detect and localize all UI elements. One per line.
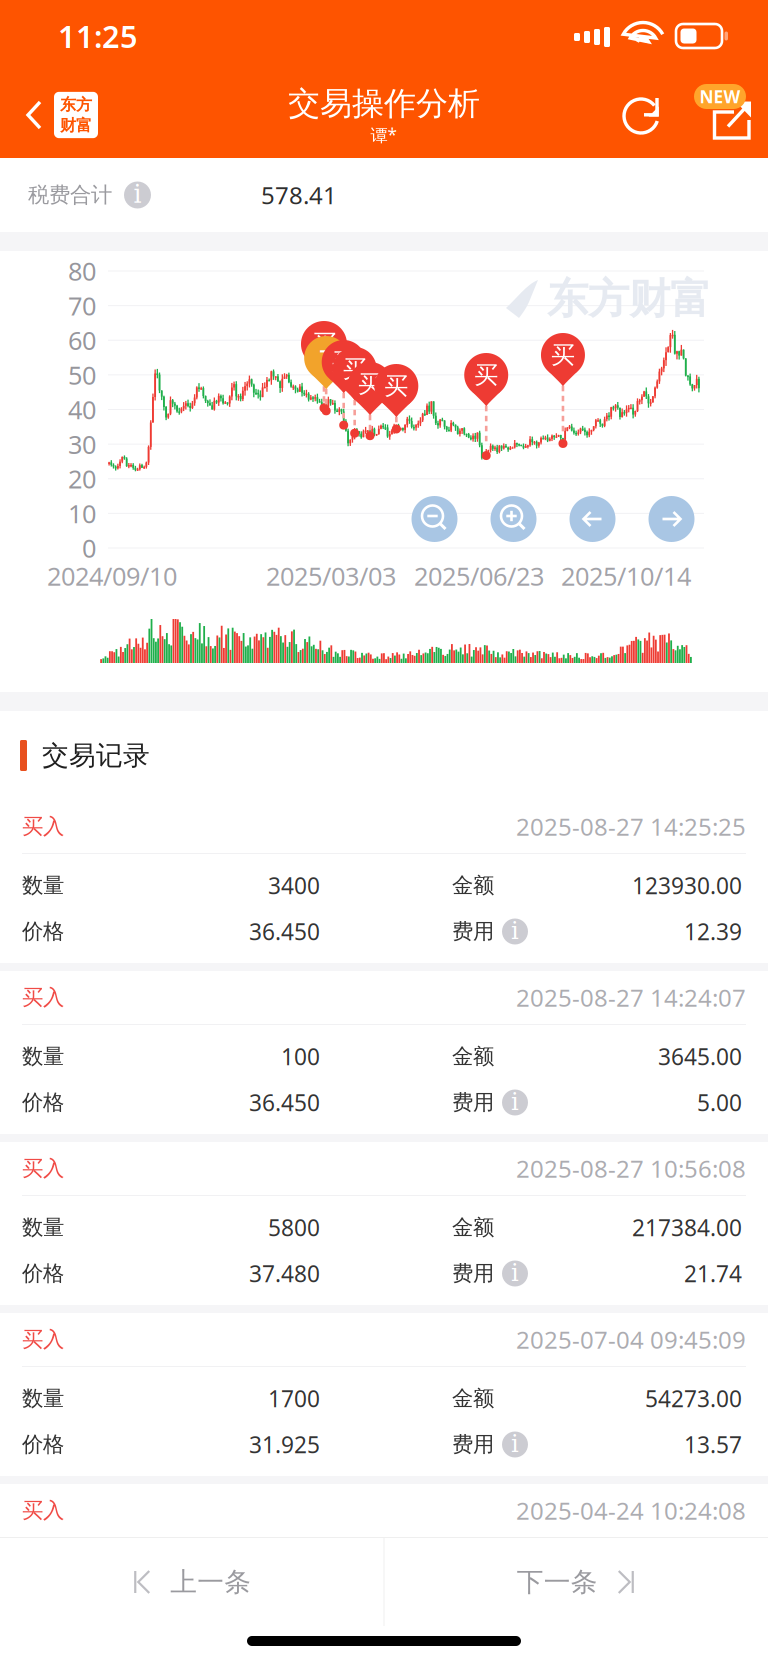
staticText: 2025/10/14 xyxy=(561,559,691,593)
staticText: 54273.00 xyxy=(645,1383,742,1413)
staticText: 金额 xyxy=(452,1043,494,1070)
staticText: 70 xyxy=(68,289,96,322)
button[interactable]: 买入 xyxy=(0,1484,768,1537)
staticText: 5800 xyxy=(268,1212,320,1242)
staticText: 税费合计 xyxy=(28,182,112,208)
staticText: 买 xyxy=(358,369,382,399)
staticText: 买 xyxy=(332,347,356,377)
staticText: 数量 xyxy=(22,872,64,899)
button[interactable]: 买入 xyxy=(0,971,768,1134)
staticText: i xyxy=(511,1087,519,1116)
staticText: 2025-08-27 14:25:25 xyxy=(516,811,746,842)
staticText: 5.00 xyxy=(697,1087,742,1117)
staticText: 2025/03/03 xyxy=(266,559,396,593)
staticText: 80 xyxy=(68,254,96,288)
button[interactable]: 买入 xyxy=(0,1313,768,1476)
staticText: 31.925 xyxy=(249,1429,320,1459)
button[interactable]: 向左 xyxy=(569,496,615,542)
staticText: 2025-08-27 10:56:08 xyxy=(516,1153,746,1184)
staticText: 下一条 xyxy=(517,1566,598,1598)
button[interactable]: 下一条 xyxy=(384,1538,768,1626)
button[interactable]: 上一条 xyxy=(0,1538,383,1626)
button[interactable]: 刷新 xyxy=(620,93,664,137)
staticText: 金额 xyxy=(452,1214,494,1241)
staticText: 东方财富 xyxy=(547,274,711,324)
staticText: 21.74 xyxy=(684,1258,742,1288)
staticText: 价格 xyxy=(22,1431,64,1458)
staticText: 买入 xyxy=(22,1326,64,1353)
staticText: 30 xyxy=(68,427,96,461)
staticText: 买 xyxy=(343,354,367,384)
staticText: 40 xyxy=(68,393,96,426)
staticText: 36.450 xyxy=(249,1087,320,1117)
staticText: 上一条 xyxy=(170,1566,251,1598)
staticText: 买入 xyxy=(22,813,64,840)
staticText: 价格 xyxy=(22,1260,64,1287)
button[interactable]: 买入 xyxy=(0,1142,768,1305)
staticText: i xyxy=(133,179,141,209)
staticText: 价格 xyxy=(22,918,64,945)
staticText: i xyxy=(511,916,519,945)
button[interactable]: 缩小 xyxy=(411,496,457,542)
staticText: 12.39 xyxy=(684,916,742,946)
button[interactable]: 放大 xyxy=(490,496,536,542)
button[interactable]: 分享 xyxy=(684,84,746,146)
staticText: 2025-04-24 10:24:08 xyxy=(516,1495,746,1526)
staticText: 13.57 xyxy=(684,1429,742,1459)
button[interactable]: 向右 xyxy=(648,496,694,542)
staticText: 0 xyxy=(82,531,96,565)
staticText: 3645.00 xyxy=(658,1041,742,1071)
staticText: 50 xyxy=(68,358,96,392)
staticText: i xyxy=(511,1429,519,1458)
staticText: 费用 xyxy=(452,1089,494,1116)
staticText: 100 xyxy=(281,1041,320,1071)
staticText: 买入 xyxy=(22,1497,64,1524)
staticText: 3400 xyxy=(268,870,320,900)
staticText: 1700 xyxy=(268,1383,320,1413)
staticText: 价格 xyxy=(22,1089,64,1116)
staticText: 交易记录 xyxy=(42,739,150,772)
staticText: 60 xyxy=(68,323,96,357)
staticText: NEW xyxy=(699,85,740,108)
staticText: 578.41 xyxy=(261,179,337,211)
staticText: 费用 xyxy=(452,1260,494,1287)
staticText: 2025-07-04 09:45:09 xyxy=(516,1324,746,1355)
staticText: 买 xyxy=(311,328,336,359)
staticText: 东方 xyxy=(60,95,92,114)
staticText: 36.450 xyxy=(249,916,320,946)
staticText: i xyxy=(511,1258,519,1287)
staticText: 2025/06/23 xyxy=(414,559,544,593)
staticText: 交易操作分析 xyxy=(288,84,480,123)
staticText: 2024/09/10 xyxy=(47,559,177,593)
staticText: 谭* xyxy=(370,123,397,146)
staticText: 123930.00 xyxy=(632,870,742,900)
staticText: 买 xyxy=(474,360,498,390)
staticText: 数量 xyxy=(22,1385,64,1412)
staticText: 财富 xyxy=(60,115,92,135)
button[interactable]: 买入 xyxy=(0,800,768,963)
staticText: 买入 xyxy=(22,984,64,1011)
staticText: 数量 xyxy=(22,1214,64,1241)
staticText: 费用 xyxy=(452,1431,494,1458)
staticText: T xyxy=(320,342,333,374)
staticText: 11:25 xyxy=(58,16,138,56)
staticText: 买 xyxy=(384,371,408,401)
staticText: 买入 xyxy=(22,1155,64,1182)
staticText: 20 xyxy=(68,462,96,495)
staticText: 2025-08-27 14:24:07 xyxy=(516,982,746,1013)
staticText: 费用 xyxy=(452,918,494,945)
button[interactable]: 东方 xyxy=(0,92,200,138)
staticText: 217384.00 xyxy=(632,1212,742,1242)
staticText: 10 xyxy=(68,497,96,530)
staticText: 数量 xyxy=(22,1043,64,1070)
staticText: 金额 xyxy=(452,872,494,899)
staticText: 买 xyxy=(551,340,575,370)
staticText: 37.480 xyxy=(249,1258,320,1288)
staticText: 金额 xyxy=(452,1385,494,1412)
